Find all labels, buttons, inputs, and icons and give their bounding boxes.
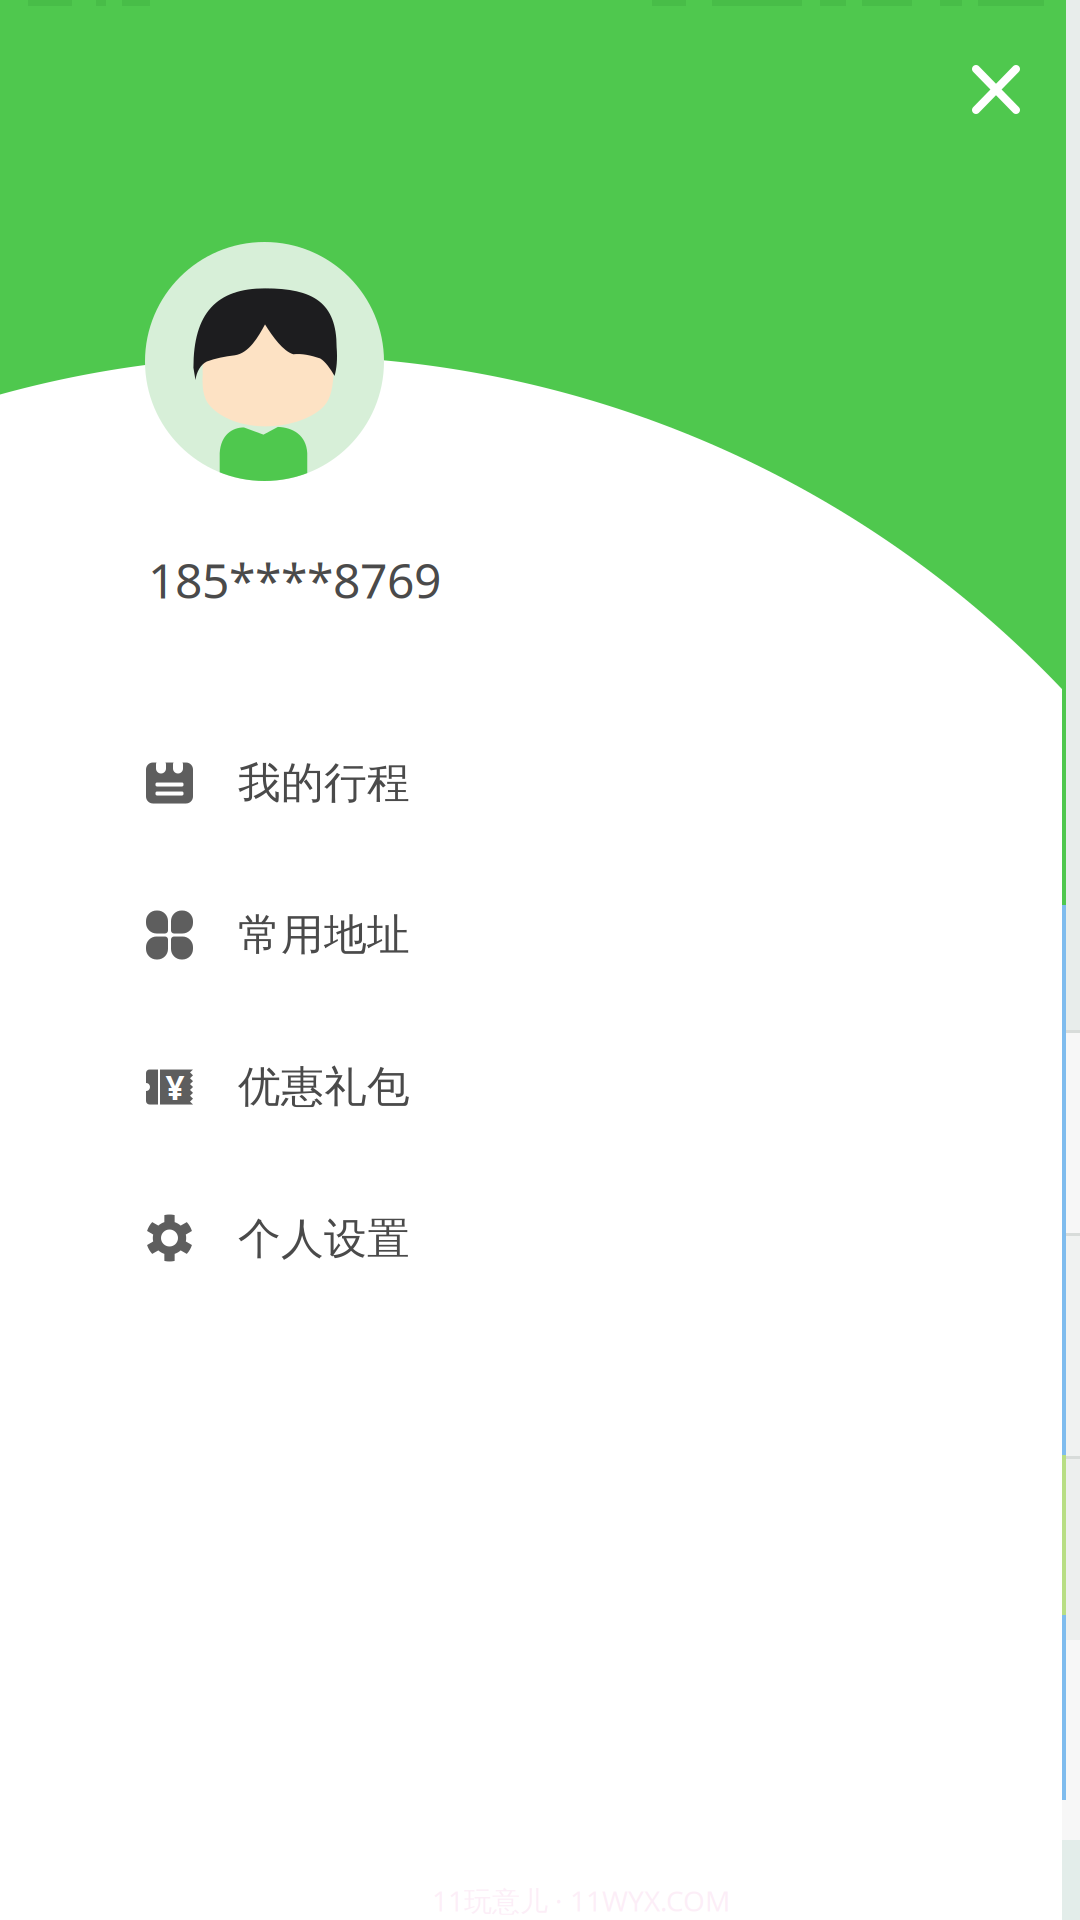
staticText: 个人设置 <box>238 1213 410 1265</box>
button[interactable]: 我的行程 <box>0 728 1080 838</box>
staticText: 优惠礼包 <box>238 1061 410 1113</box>
button[interactable]: Close <box>936 29 1056 150</box>
button[interactable]: 常用地址 <box>0 880 1080 990</box>
button[interactable]: 个人设置 <box>0 1184 1080 1294</box>
staticText: 我的行程 <box>238 757 410 809</box>
staticText: 185****8769 <box>148 548 441 612</box>
button[interactable]: ¥ <box>0 1032 1080 1142</box>
staticText: ¥ <box>165 1065 184 1109</box>
staticText: 常用地址 <box>238 909 410 961</box>
staticText: 11玩意儿 · 11WYX.COM <box>432 1882 730 1919</box>
